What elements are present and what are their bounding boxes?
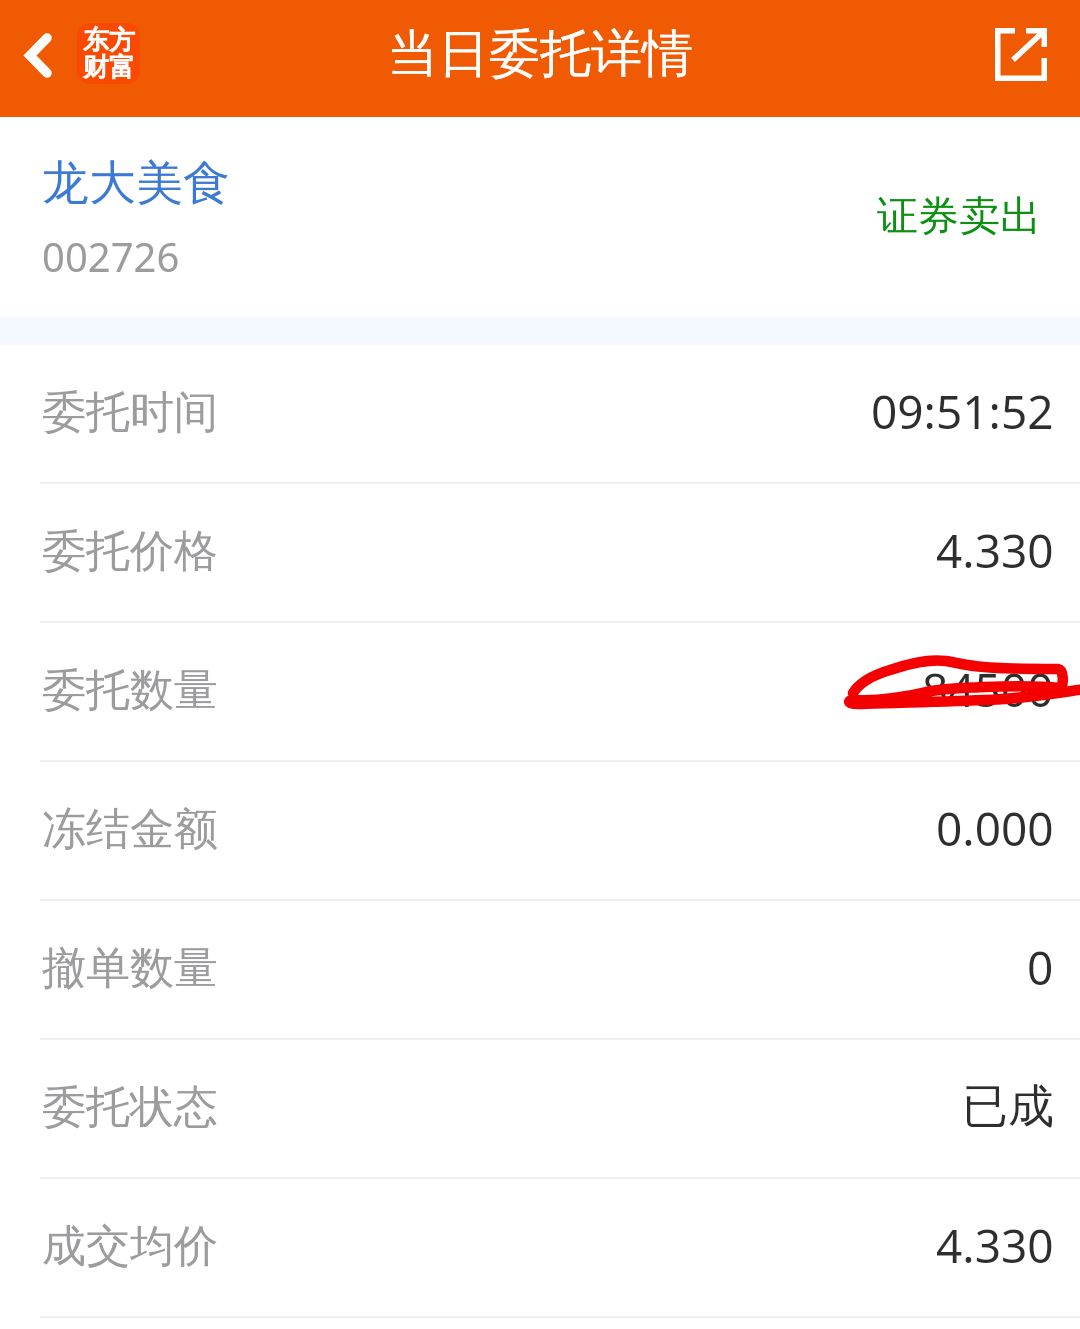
staticText: 证券卖出 xyxy=(877,191,1041,243)
button[interactable]: Back xyxy=(4,22,72,88)
staticText: 委托数量 xyxy=(42,663,218,718)
button[interactable]: 冻结金额 xyxy=(0,762,1080,901)
button[interactable]: 委托状态 xyxy=(0,1040,1080,1179)
staticText: 冻结金额 xyxy=(42,802,218,857)
staticText: 4.330 xyxy=(936,1214,1054,1277)
button[interactable]: 东方 财富 xyxy=(77,23,140,84)
staticText: 09:51:52 xyxy=(871,380,1054,443)
button[interactable]: 委托数量 xyxy=(0,623,1080,762)
staticText: 东方 财富 xyxy=(83,24,135,84)
button[interactable]: 成交均价 xyxy=(0,1179,1080,1318)
staticText: 当日委托详情 xyxy=(387,22,693,86)
button[interactable]: 委托价格 xyxy=(0,484,1080,623)
button[interactable]: Share xyxy=(985,18,1057,91)
staticText: 撤单数量 xyxy=(42,941,218,996)
staticText: 委托价格 xyxy=(42,524,218,579)
staticText: 84500 xyxy=(922,658,1054,721)
staticText: 委托时间 xyxy=(42,385,218,440)
staticText: 4.330 xyxy=(936,519,1054,582)
staticText: 龙大美食 xyxy=(42,154,230,213)
staticText: 委托状态 xyxy=(42,1080,218,1135)
button[interactable]: 撤单数量 xyxy=(0,901,1080,1040)
staticText: 成交均价 xyxy=(42,1219,218,1274)
staticText: 0.000 xyxy=(936,797,1054,860)
staticText: 0 xyxy=(1027,936,1054,999)
staticText: 002726 xyxy=(42,229,180,283)
staticText: 已成 xyxy=(962,1078,1054,1136)
button[interactable]: 委托时间 xyxy=(0,345,1080,484)
